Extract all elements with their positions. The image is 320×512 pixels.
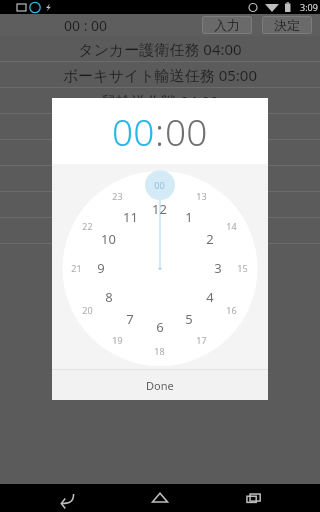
staticText: 敵地偵察作戦 00:45 [94, 195, 227, 215]
staticText: 23 [112, 190, 123, 202]
staticText: 5 [185, 310, 193, 328]
staticText: 3:09 [300, 1, 318, 13]
button[interactable]: 艦隊決戦援護作戦 15:00 [0, 166, 320, 191]
button[interactable]: 00 [165, 106, 208, 156]
button[interactable]: 囮機動部隊支援作戦 12:00 [0, 140, 320, 165]
button[interactable]: 海上護衛作戦 02:00 [0, 218, 320, 243]
button[interactable]: Back [40, 484, 94, 512]
staticText: 21 [71, 262, 82, 274]
staticText: : [155, 106, 165, 156]
button[interactable]: 包囲陸戦隊撤収作戦 06:00 [0, 114, 320, 139]
staticText: 3 [214, 259, 222, 277]
staticText: 13 [196, 190, 207, 202]
staticText: 00 [154, 179, 165, 191]
staticText: 18 [154, 345, 165, 357]
staticText: 8 [105, 288, 113, 306]
button[interactable]: 敵地偵察作戦 00:45 [0, 192, 320, 217]
staticText: 包囲陸戦隊撤収作戦 06:00 [71, 117, 249, 137]
staticText: 入力 [214, 17, 240, 33]
staticText: 海上護衛作戦 02:00 [94, 221, 227, 241]
staticText: 決定 [274, 17, 300, 33]
staticText: 鼠輸送作戦 04:00 [101, 91, 219, 111]
staticText: 15 [237, 262, 248, 274]
staticText: 11 [123, 208, 138, 226]
button[interactable]: タンカー護衛任務 04:00 [0, 36, 320, 61]
staticText: 囮機動部隊支援作戦 12:00 [71, 143, 249, 163]
button[interactable]: 決定 [262, 16, 312, 34]
staticText: 1 [185, 208, 193, 226]
staticText: 17 [196, 334, 207, 346]
staticText: 22 [82, 220, 93, 232]
button[interactable]: ボーキサイト輸送任務 05:00 [0, 62, 320, 87]
staticText: Done [146, 378, 174, 393]
button[interactable]: 00 [112, 106, 155, 156]
staticText: 14 [226, 220, 237, 232]
staticText: 10 [101, 230, 116, 248]
button[interactable]: Clock face, select hour [52, 164, 268, 369]
staticText: ボーキサイト輸送任務 05:00 [63, 65, 257, 85]
staticText: 4 [206, 288, 214, 306]
staticText: 7 [126, 310, 134, 328]
staticText: 20 [82, 304, 93, 316]
staticText: 16 [226, 304, 237, 316]
button[interactable]: Home [133, 484, 187, 512]
button[interactable]: 鼠輸送作戦 04:00 [0, 88, 320, 113]
button[interactable]: Recent apps [227, 484, 281, 512]
staticText: 12 [152, 200, 167, 218]
staticText: 2 [206, 230, 214, 248]
button[interactable]: 入力 [202, 16, 252, 34]
staticText: 6 [156, 318, 164, 336]
button[interactable]: Done [52, 370, 268, 400]
staticText: 艦隊決戦援護作戦 15:00 [79, 169, 242, 189]
staticText: 9 [97, 259, 105, 277]
staticText: 00 : 00 [64, 16, 108, 35]
staticText: タンカー護衛任務 04:00 [78, 39, 242, 59]
staticText: 19 [112, 334, 123, 346]
